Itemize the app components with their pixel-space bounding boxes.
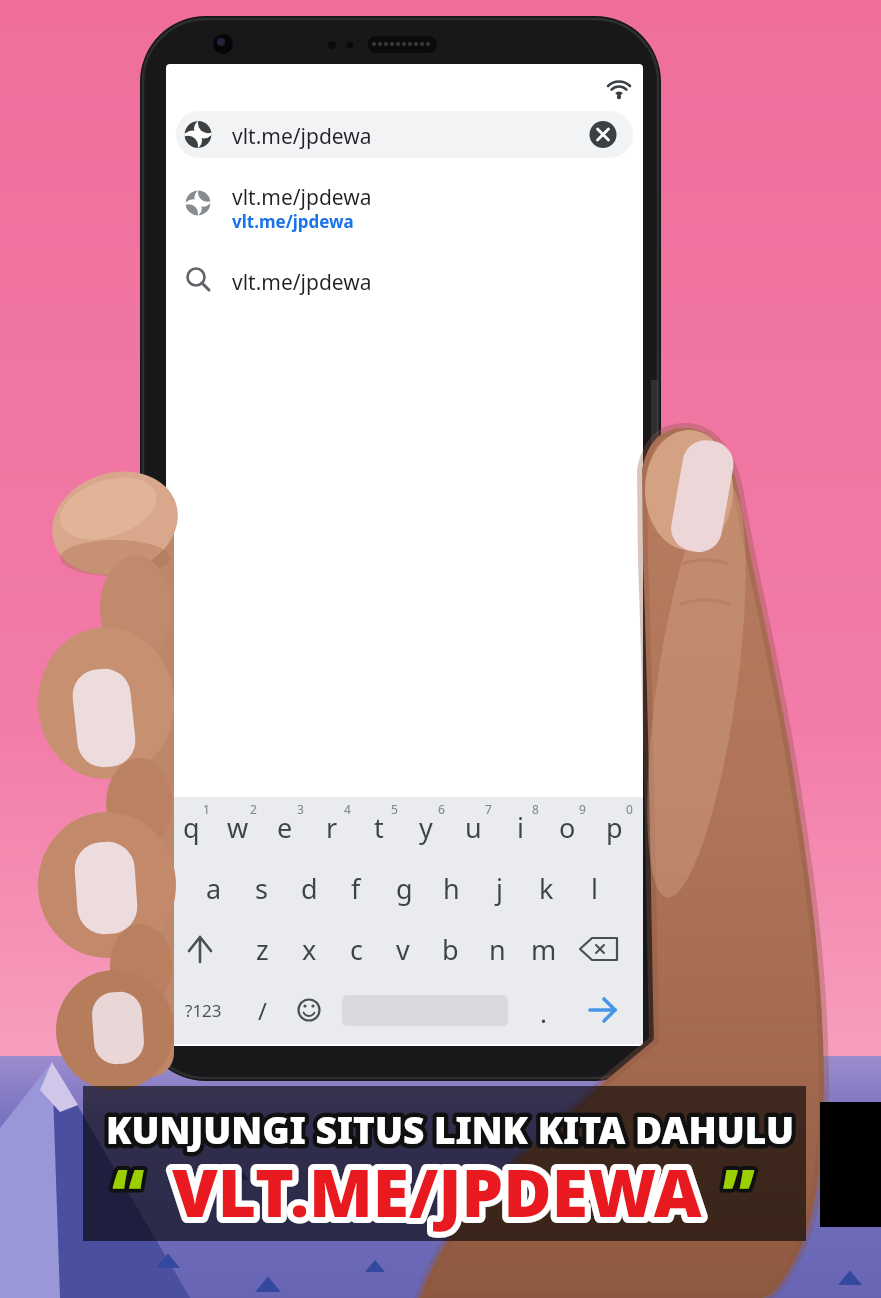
button[interactable]: r [309, 799, 355, 855]
button[interactable]: k [523, 860, 569, 916]
button[interactable]: a [191, 860, 237, 916]
staticText: u [465, 809, 482, 846]
button[interactable]: z [239, 921, 285, 977]
button[interactable]: y [403, 799, 449, 855]
button[interactable]: l [571, 860, 617, 916]
button[interactable] [585, 988, 623, 1032]
button[interactable] [583, 115, 623, 155]
staticText: 9 [579, 801, 586, 817]
staticText: vlt.me/jpdewa [232, 122, 372, 151]
button[interactable]: d [286, 860, 332, 916]
button[interactable]: v [380, 921, 426, 977]
staticText: c [350, 931, 363, 968]
staticText: j [496, 870, 503, 907]
button[interactable] [166, 252, 643, 304]
button[interactable]: t [356, 799, 402, 855]
button[interactable] [176, 111, 633, 158]
staticText: VLT.ME/JPDEWA [172, 1146, 702, 1236]
staticText: h [443, 870, 460, 907]
staticText: s [255, 870, 268, 907]
staticText: m [531, 931, 557, 968]
button[interactable]: p [591, 799, 637, 855]
staticText: 5 [391, 801, 398, 817]
staticText: / [258, 994, 267, 1027]
staticText: 8 [532, 801, 539, 817]
staticText: 2 [250, 801, 257, 817]
staticText: i [517, 809, 524, 846]
staticText: k [539, 870, 554, 907]
button[interactable] [185, 925, 217, 973]
staticText: 7 [485, 801, 492, 817]
button[interactable]: h [428, 860, 474, 916]
staticText: 4 [344, 801, 351, 817]
staticText: ?123 [185, 999, 222, 1022]
button[interactable]: s [238, 860, 284, 916]
staticText: t [374, 809, 384, 846]
staticText: q [183, 809, 200, 846]
button[interactable]: f [333, 860, 379, 916]
staticText: “ [112, 1146, 145, 1236]
staticText: p [606, 809, 623, 846]
staticText: KUNJUNGI SITUS LINK KITA DAHULU [106, 1104, 794, 1154]
button[interactable]: g [381, 860, 427, 916]
staticText: vlt.me/jpdewa [232, 183, 372, 212]
staticText: y [419, 809, 433, 846]
staticText: ” [722, 1146, 755, 1236]
staticText: f [351, 870, 361, 907]
button[interactable]: . [520, 984, 566, 1040]
staticText: “ [112, 1146, 145, 1236]
button[interactable]: ?123 [174, 988, 232, 1032]
button[interactable]: w [215, 799, 261, 855]
staticText: d [301, 870, 318, 907]
staticText: KUNJUNGI SITUS LINK KITA DAHULU [106, 1104, 794, 1154]
button[interactable] [166, 172, 643, 234]
staticText: 6 [438, 801, 445, 817]
staticText: x [302, 931, 317, 968]
staticText: 0 [626, 801, 633, 817]
button[interactable]: o [544, 799, 590, 855]
button[interactable]: m [521, 921, 567, 977]
staticText: z [256, 931, 269, 968]
staticText: 1 [203, 801, 210, 817]
button[interactable]: e [262, 799, 308, 855]
staticText: vlt.me/jpdewa [232, 210, 354, 233]
staticText: 3 [297, 801, 304, 817]
button[interactable]: j [476, 860, 522, 916]
button[interactable]: u [450, 799, 496, 855]
staticText: a [206, 870, 222, 907]
staticText: VLT.ME/JPDEWA [172, 1146, 702, 1236]
staticText: w [227, 809, 249, 846]
staticText: vlt.me/jpdewa [232, 268, 372, 297]
button[interactable] [585, 925, 627, 973]
staticText: o [559, 809, 576, 846]
staticText: r [326, 809, 338, 846]
button[interactable]: c [333, 921, 379, 977]
button[interactable]: / [239, 982, 285, 1038]
staticText: l [591, 870, 598, 907]
staticText: b [442, 931, 459, 968]
staticText: e [277, 809, 293, 846]
button[interactable]: q [168, 799, 214, 855]
button[interactable]: b [427, 921, 473, 977]
staticText: ” [722, 1146, 755, 1236]
staticText: v [396, 931, 410, 968]
staticText: . [540, 995, 547, 1030]
button[interactable]: x [286, 921, 332, 977]
button[interactable]: i [497, 799, 543, 855]
staticText: g [396, 870, 413, 907]
staticText: n [489, 931, 506, 968]
button[interactable]: n [474, 921, 520, 977]
button[interactable] [291, 988, 329, 1032]
